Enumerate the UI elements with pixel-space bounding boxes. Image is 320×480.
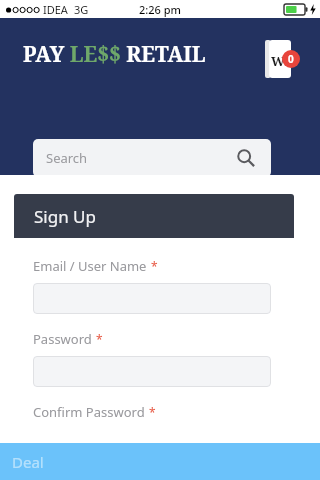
staticText: PAY LE$$ RETAIL	[23, 40, 206, 69]
button[interactable]	[33, 356, 271, 387]
button[interactable]: Search	[33, 139, 271, 177]
staticText: *	[96, 331, 103, 347]
staticText: *	[151, 258, 158, 274]
staticText: 0	[288, 52, 294, 66]
staticText: Sign Up	[34, 205, 96, 228]
staticText: Password	[33, 330, 92, 348]
staticText: Search	[46, 149, 88, 167]
button[interactable]: Deal	[0, 443, 320, 480]
staticText: Email / User Name	[33, 257, 147, 275]
staticText: Confirm Password	[33, 403, 145, 421]
staticText: *	[149, 404, 156, 420]
staticText: W	[271, 52, 285, 70]
button[interactable]	[33, 283, 271, 314]
staticText: Deal	[12, 452, 44, 472]
staticText: 3G	[74, 2, 89, 17]
staticText: IDEA	[43, 2, 68, 17]
button[interactable]: Cart, 0 items	[265, 40, 309, 80]
staticText: 2:26 pm	[139, 2, 181, 17]
